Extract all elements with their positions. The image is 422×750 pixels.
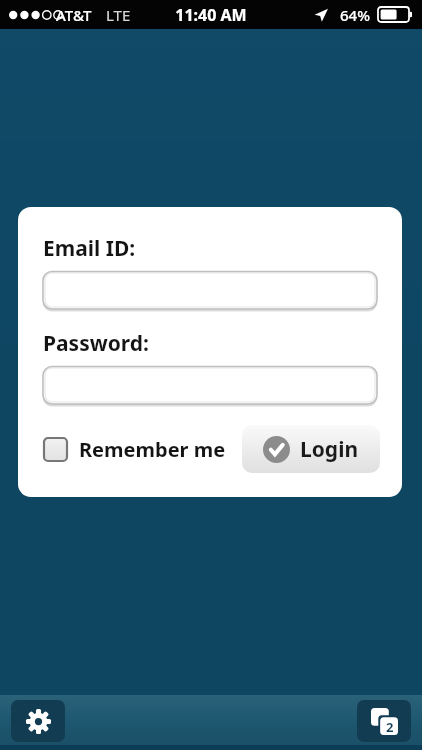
staticText: 2 [386,718,394,736]
staticText: Password: [43,329,149,358]
staticText: AT&T [56,5,92,25]
staticText: 64% [340,5,370,25]
button[interactable]: Settings [11,700,65,742]
button[interactable]: Remember me [42,430,228,469]
staticText: Remember me [79,436,226,463]
staticText: LTE [106,5,131,25]
button[interactable] [42,366,378,406]
button[interactable]: Tabs, 2 open [357,700,411,742]
staticText: Email ID: [43,234,136,263]
staticText: Login [300,435,359,464]
button[interactable] [42,271,378,311]
staticText: 11:40 AM [0,4,422,26]
button[interactable]: Login [242,425,380,473]
